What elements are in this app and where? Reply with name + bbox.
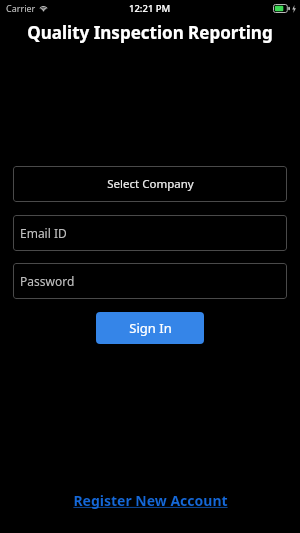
button[interactable]: Register New Account: [73, 491, 228, 510]
button[interactable]: Sign In: [96, 312, 204, 344]
staticText: Sign In: [129, 319, 172, 337]
button[interactable]: Email ID: [13, 215, 287, 251]
staticText: 12:21 PM: [129, 2, 171, 15]
staticText: Email ID: [20, 225, 67, 241]
button[interactable]: Select Company: [13, 166, 287, 202]
button[interactable]: Password: [13, 263, 287, 299]
staticText: Select Company: [107, 176, 194, 192]
staticText: Password: [20, 273, 75, 289]
other: Charging: [292, 5, 296, 13]
staticText: Quality Inspection Reporting: [27, 21, 273, 44]
staticText: Carrier: [6, 2, 36, 14]
staticText: Register New Account: [73, 491, 228, 510]
